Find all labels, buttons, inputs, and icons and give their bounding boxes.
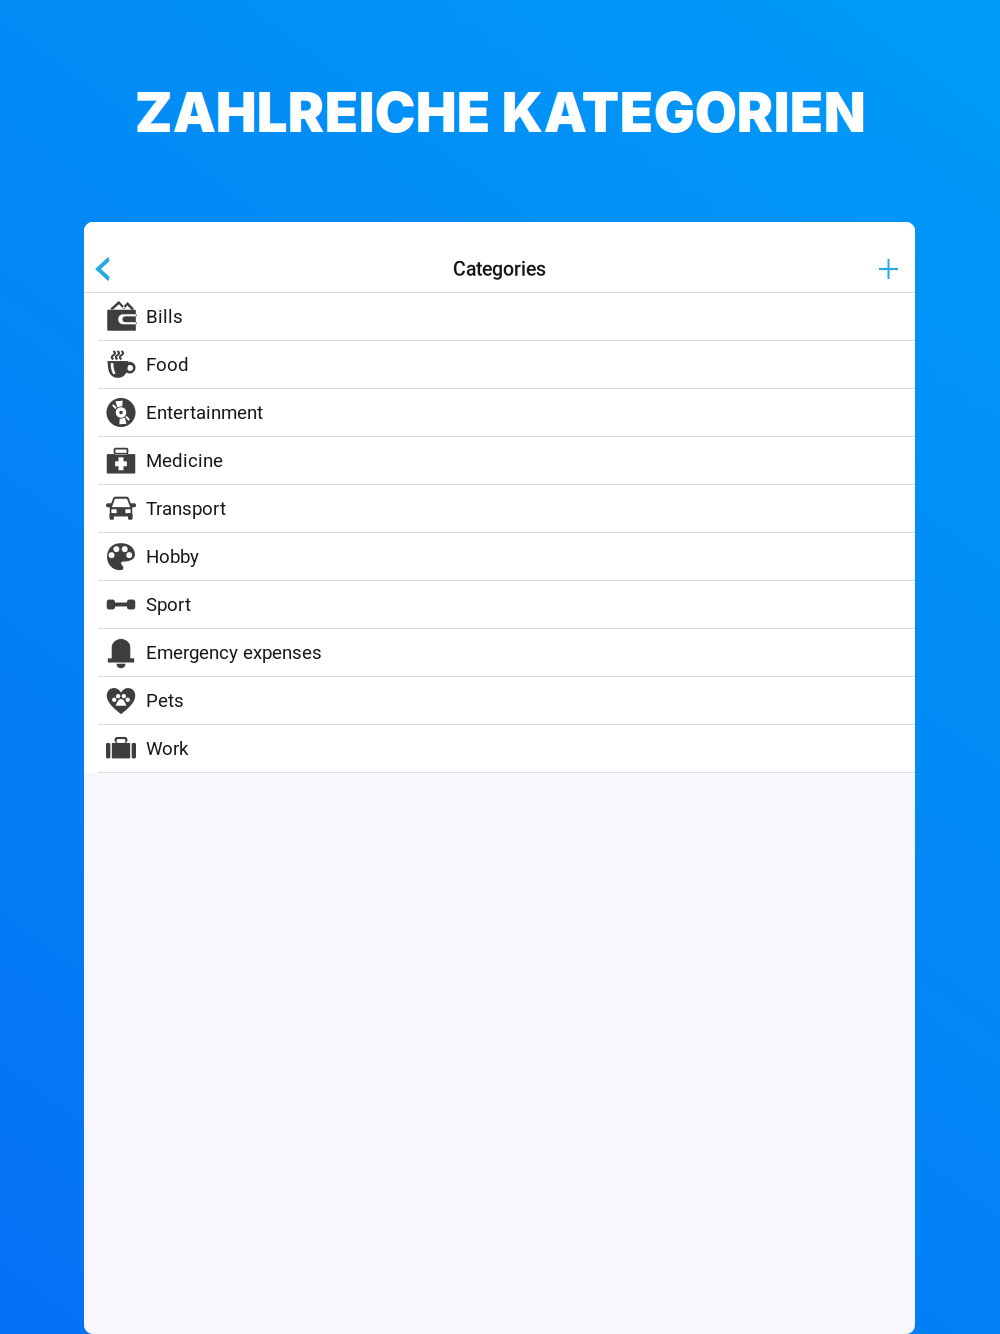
staticText: Emergency expenses — [146, 642, 322, 663]
staticText: Sport — [146, 594, 191, 615]
button[interactable]: Back — [84, 246, 128, 291]
button[interactable]: Pets — [84, 677, 915, 725]
staticText: Food — [146, 354, 189, 375]
staticText: Entertainment — [146, 402, 263, 423]
staticText: ZAHLREICHE KATEGORIEN — [134, 79, 865, 145]
button[interactable]: Medicine — [84, 437, 915, 485]
staticText: Hobby — [146, 546, 199, 567]
button[interactable]: Sport — [84, 581, 915, 629]
button[interactable]: Transport — [84, 485, 915, 533]
button[interactable]: Food — [84, 341, 915, 389]
button[interactable]: Entertainment — [84, 389, 915, 437]
button[interactable]: Work — [84, 725, 915, 773]
staticText: Categories — [453, 258, 546, 280]
staticText: Pets — [146, 690, 184, 711]
staticText: Medicine — [146, 450, 223, 471]
button[interactable]: Add category — [861, 246, 915, 291]
button[interactable]: Emergency expenses — [84, 629, 915, 677]
button[interactable]: Bills — [84, 293, 915, 341]
staticText: Bills — [146, 306, 183, 327]
staticText: Transport — [146, 498, 226, 519]
staticText: Work — [146, 738, 188, 759]
button[interactable]: Hobby — [84, 533, 915, 581]
